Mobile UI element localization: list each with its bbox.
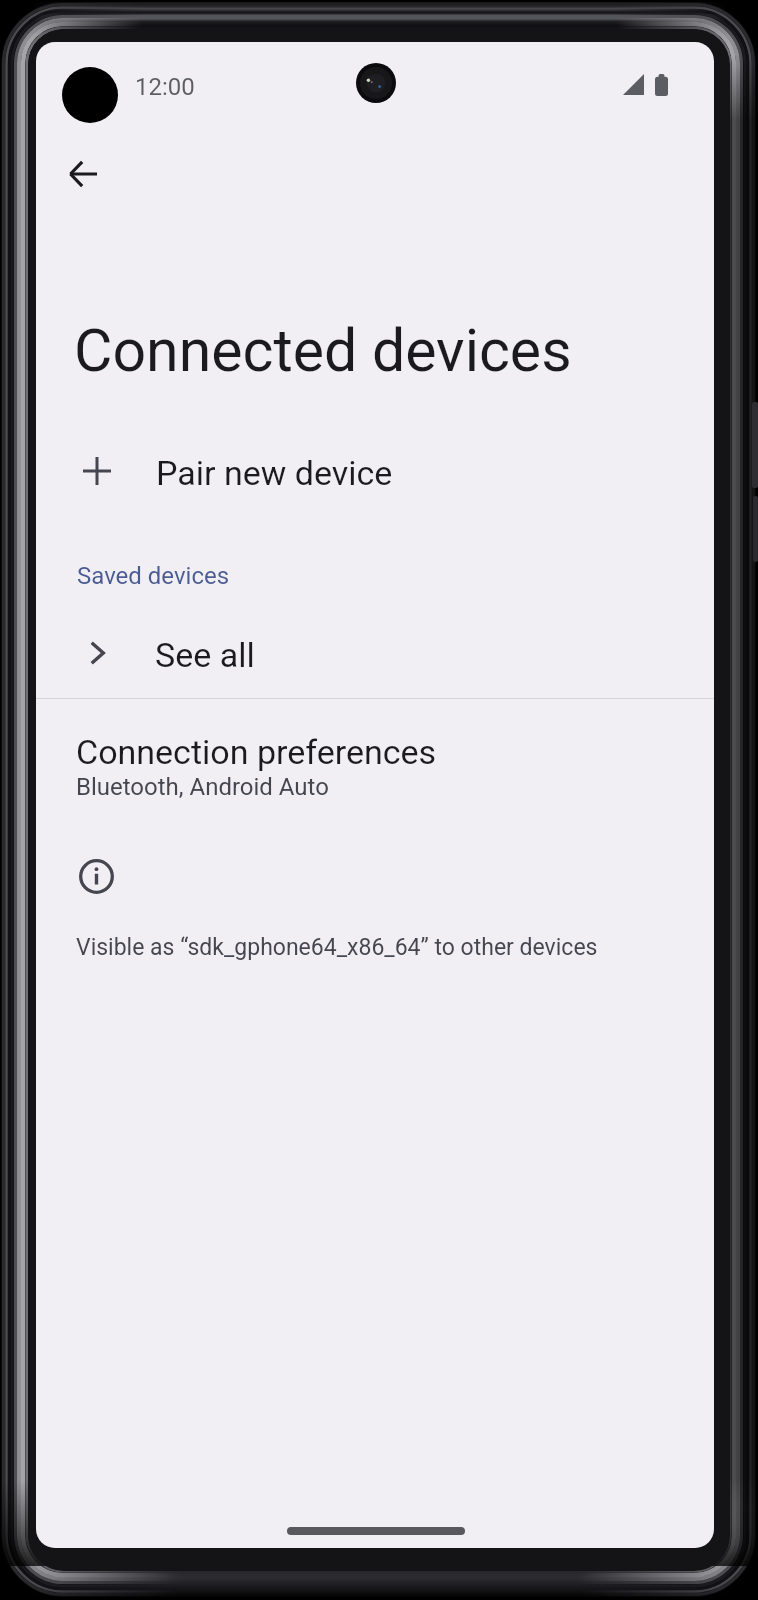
staticText: Visible as “sdk_gphone64_x86_64” to othe… (76, 934, 598, 961)
button[interactable]: Connection preferences (36, 699, 714, 819)
button[interactable]: Pair new device (36, 435, 714, 511)
button[interactable]: Navigate up (59, 150, 107, 198)
staticText: Bluetooth, Android Auto (76, 773, 329, 801)
staticText: Pair new device (156, 453, 393, 493)
staticText: Saved devices (77, 562, 230, 590)
button[interactable]: See all (36, 617, 714, 693)
staticText: Connection preferences (76, 732, 437, 772)
staticText: Connected devices (74, 316, 572, 385)
staticText: See all (155, 635, 255, 675)
staticText: 12:00 (135, 73, 195, 101)
